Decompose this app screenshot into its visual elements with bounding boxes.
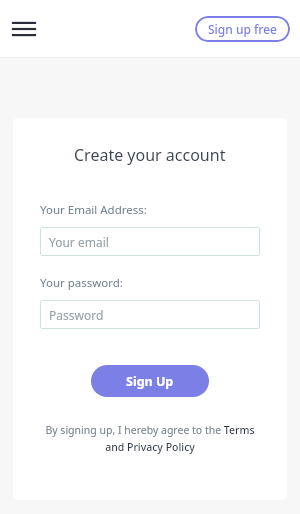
button[interactable]: Menu (8, 13, 40, 45)
staticText: Password (49, 307, 104, 323)
staticText: Your email (49, 234, 109, 250)
staticText: Your Email Address: (40, 202, 147, 218)
button[interactable]: By signing up, I hereby agree to the Ter… (37, 423, 263, 454)
staticText: Sign Up (126, 373, 174, 390)
staticText: By signing up, I hereby agree to the Ter… (37, 423, 263, 454)
button[interactable]: Sign Up (91, 365, 209, 397)
button[interactable]: Your email (40, 227, 260, 256)
button[interactable]: Password (40, 300, 260, 329)
staticText: Your password: (40, 275, 123, 291)
button[interactable]: Sign up free (195, 16, 290, 42)
staticText: Sign up free (208, 21, 277, 37)
staticText: Create your account (74, 144, 226, 166)
